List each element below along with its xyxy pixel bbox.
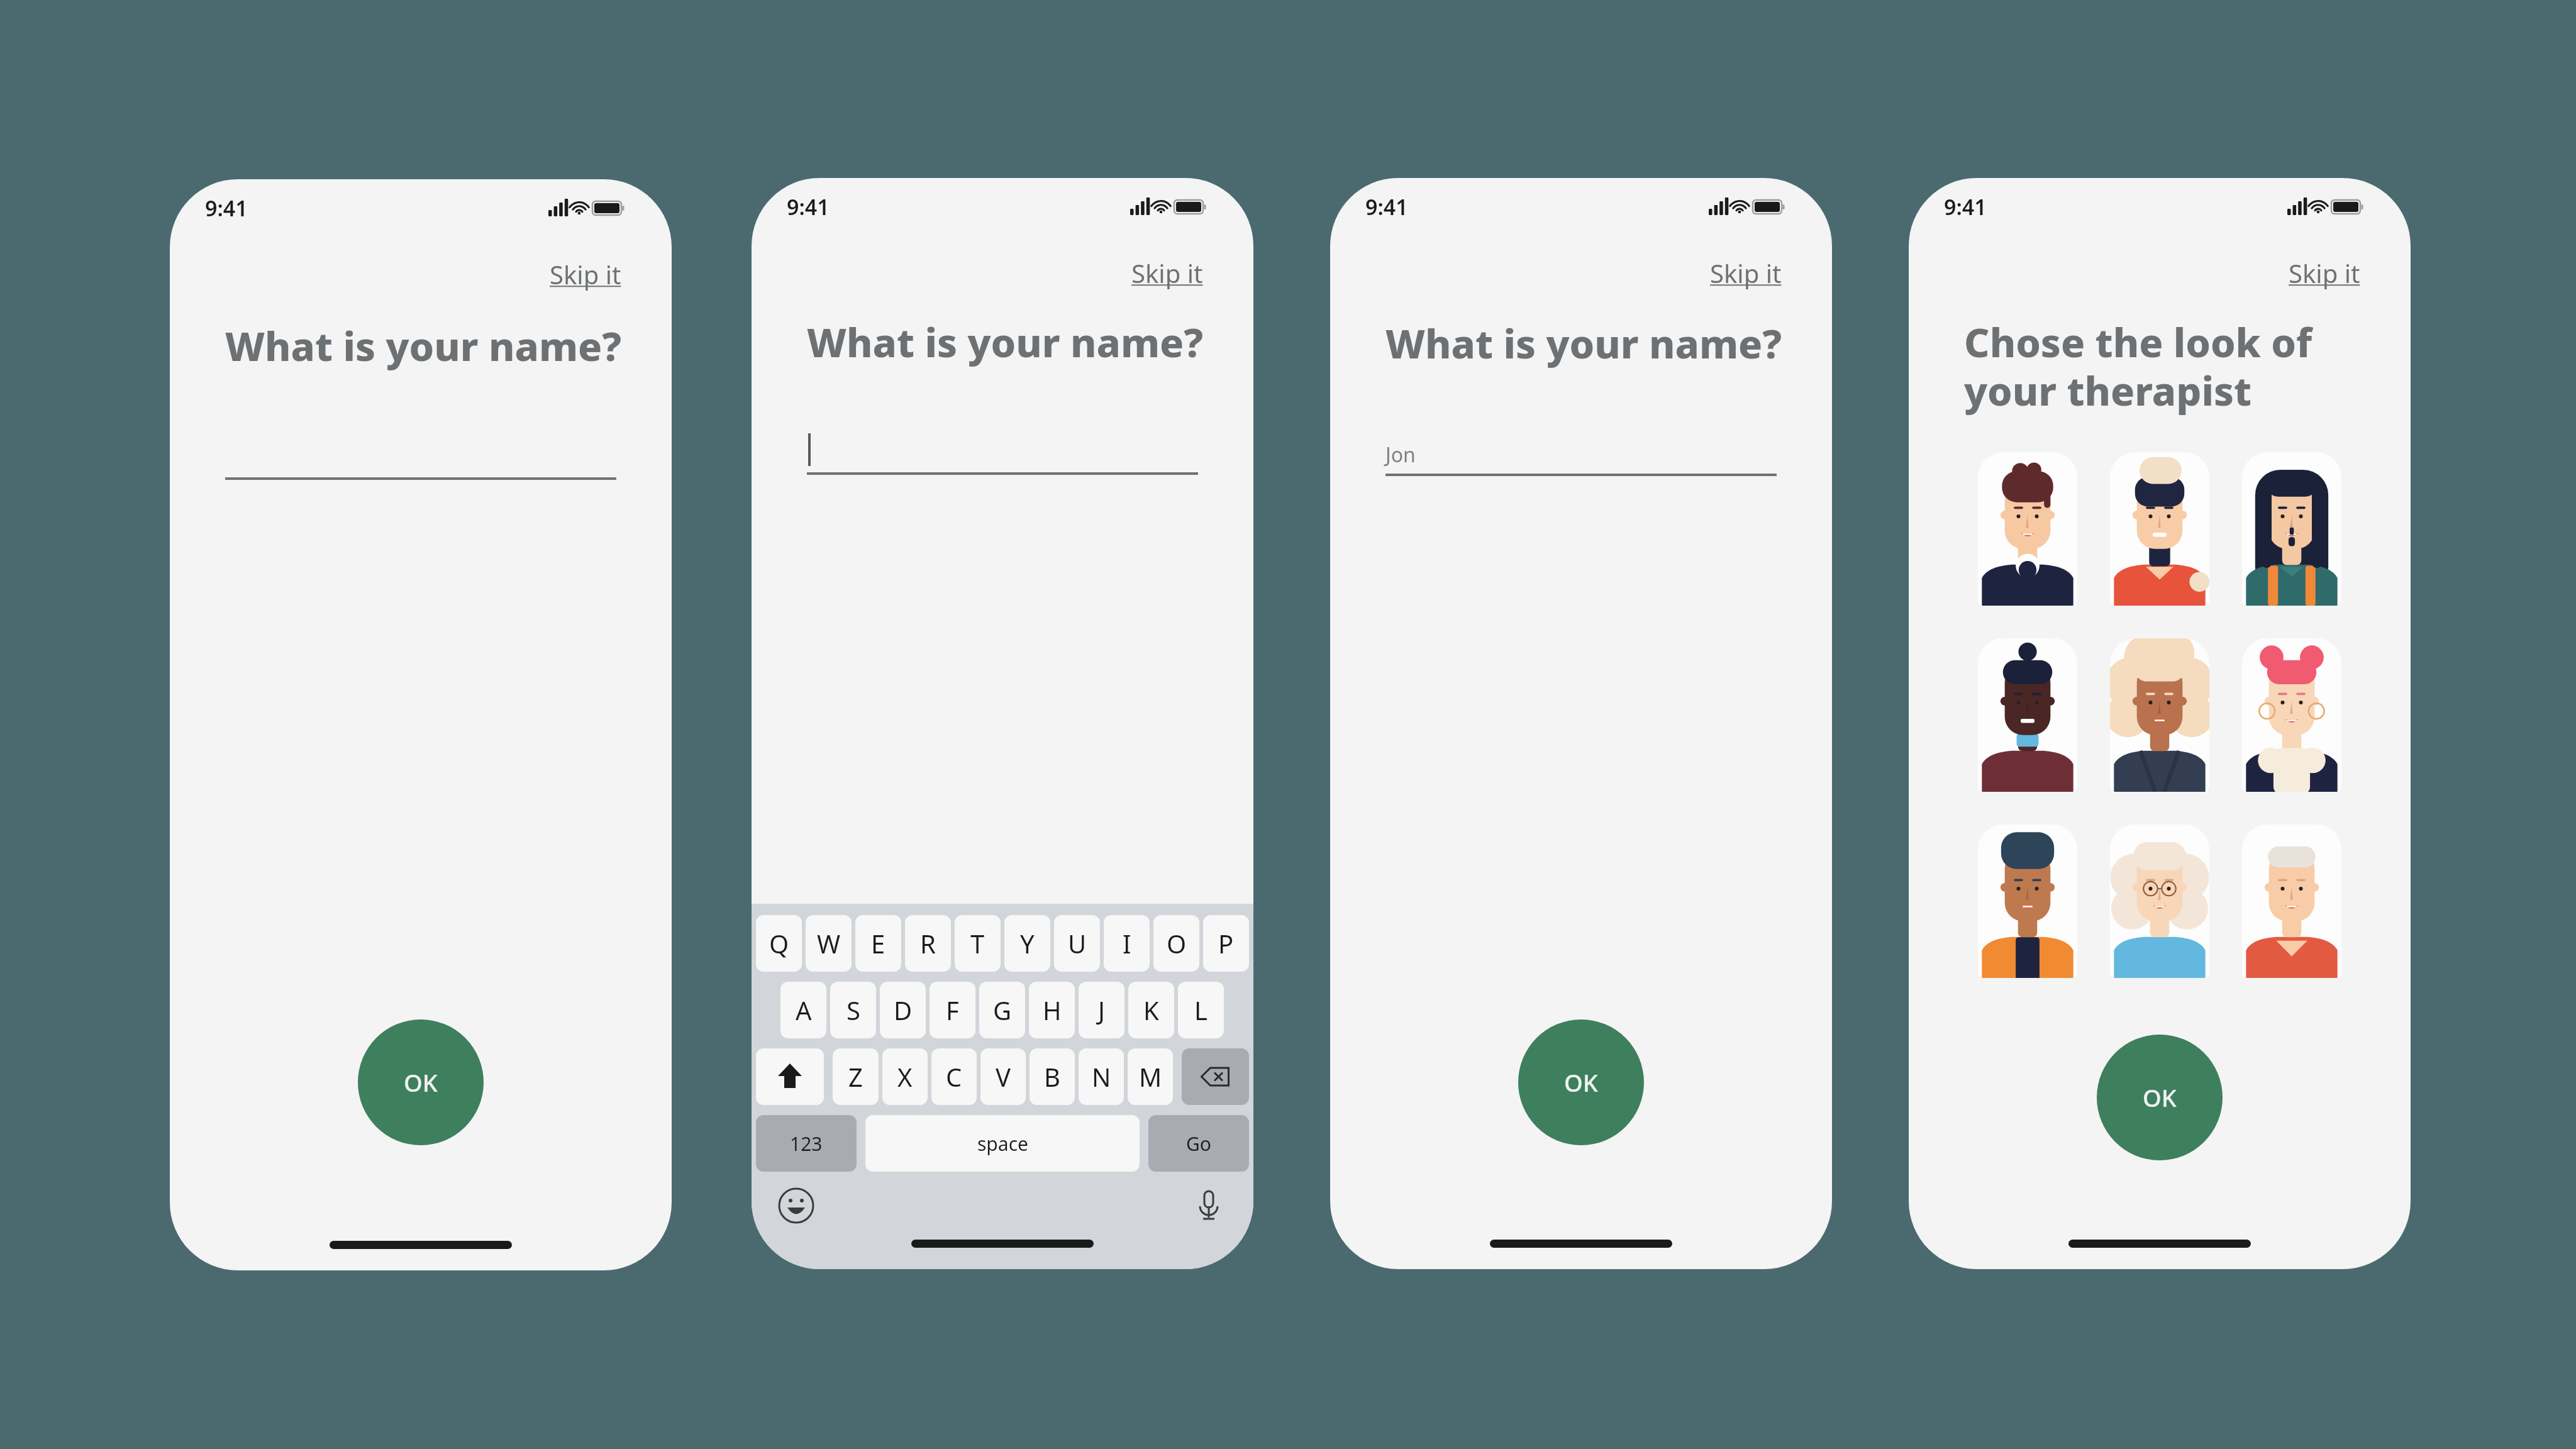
button[interactable]: D [880,982,926,1038]
button[interactable]: F [930,982,975,1038]
button[interactable]: Skip it [546,253,625,295]
button[interactable]: Skip it [1706,252,1785,294]
staticText: What is your name? [807,315,1204,369]
staticText: Skip it [1710,256,1782,290]
staticText: L [1194,993,1207,1027]
button[interactable]: Therapist avatar [1978,452,2077,606]
button[interactable]: Therapist avatar [2242,824,2341,978]
staticText: X [897,1060,913,1094]
staticText: OK [1564,1066,1598,1099]
staticText: R [920,926,936,960]
button[interactable]: L [1178,982,1224,1038]
button[interactable]: Therapist avatar [2242,638,2341,792]
button[interactable]: H [1029,982,1075,1038]
button[interactable]: B [1030,1048,1075,1105]
button[interactable]: Dictation [1189,1186,1228,1225]
button[interactable]: J [1079,982,1124,1038]
staticText: 9:41 [1944,192,1987,221]
staticText: U [1068,926,1087,960]
staticText: OK [404,1066,438,1099]
button[interactable]: OK [2097,1035,2223,1160]
staticText: N [1092,1060,1111,1094]
button[interactable]: T [955,915,1001,972]
staticText: 123 [790,1131,823,1157]
button[interactable]: C [931,1048,977,1105]
button[interactable]: Backspace [1182,1048,1249,1105]
button[interactable]: R [905,915,951,972]
staticText: C [946,1060,962,1094]
button[interactable]: U [1054,915,1100,972]
button[interactable]: OK [1518,1019,1644,1145]
button[interactable]: P [1203,915,1249,972]
staticText: Y [1020,926,1035,960]
button[interactable]: Go [1148,1115,1249,1172]
staticText: S [847,993,860,1027]
staticText: I [1123,926,1131,960]
button[interactable]: OK [358,1019,484,1145]
button[interactable]: Y [1004,915,1050,972]
button[interactable]: I [1104,915,1150,972]
staticText: K [1143,993,1159,1027]
button[interactable]: X [882,1048,928,1105]
staticText: O [1167,926,1187,960]
staticText: OK [2143,1081,2177,1114]
staticText: Jon [1385,441,1416,469]
staticText: T [970,926,985,960]
staticText: A [796,993,812,1027]
button[interactable]: K [1128,982,1174,1038]
button[interactable]: E [855,915,901,972]
button[interactable]: Q [756,915,802,972]
staticText: Z [848,1060,863,1094]
button[interactable]: Therapist avatar [2110,638,2209,792]
button[interactable]: N [1079,1048,1124,1105]
staticText: Skip it [1131,256,1203,290]
staticText: W [817,926,841,960]
staticText: G [993,993,1012,1027]
staticText: Skip it [2289,256,2360,290]
button[interactable]: Shift [756,1048,824,1105]
staticText: E [871,926,885,960]
button[interactable]: Emoji [777,1186,816,1225]
staticText: Chose the look of your therapist [1964,315,2312,417]
button[interactable]: Skip it [1128,252,1207,294]
button[interactable] [225,430,616,480]
staticText: Q [769,926,789,960]
button[interactable]: O [1153,915,1199,972]
staticText: V [996,1060,1011,1094]
button[interactable]: Therapist avatar [2110,452,2209,606]
staticText: F [946,993,959,1027]
staticText: Go [1186,1131,1211,1157]
button[interactable]: Therapist avatar [1978,638,2077,792]
button[interactable]: Therapist avatar [2110,824,2209,978]
staticText: space [977,1131,1028,1157]
staticText: 9:41 [205,194,248,223]
staticText: P [1218,926,1234,960]
button[interactable]: A [780,982,826,1038]
button[interactable]: V [980,1048,1026,1105]
staticText: 9:41 [787,192,830,221]
button[interactable]: Therapist avatar [2242,452,2341,606]
staticText: What is your name? [1385,316,1782,370]
staticText: Skip it [550,257,621,291]
staticText: What is your name? [225,319,622,373]
staticText: M [1139,1060,1162,1094]
button[interactable]: 123 [756,1115,857,1172]
button[interactable]: Jon [1385,426,1777,476]
button[interactable]: M [1128,1048,1173,1105]
button[interactable]: Z [833,1048,879,1105]
button[interactable]: space [865,1115,1140,1172]
staticText: 9:41 [1365,192,1408,221]
button[interactable]: Therapist avatar [1978,824,2077,978]
staticText: D [894,993,913,1027]
staticText: B [1044,1060,1060,1094]
button[interactable] [807,425,1198,475]
button[interactable]: Skip it [2285,252,2364,294]
staticText: J [1098,993,1105,1027]
button[interactable]: W [806,915,852,972]
staticText: H [1043,993,1062,1027]
button[interactable]: S [830,982,876,1038]
button[interactable]: G [979,982,1025,1038]
